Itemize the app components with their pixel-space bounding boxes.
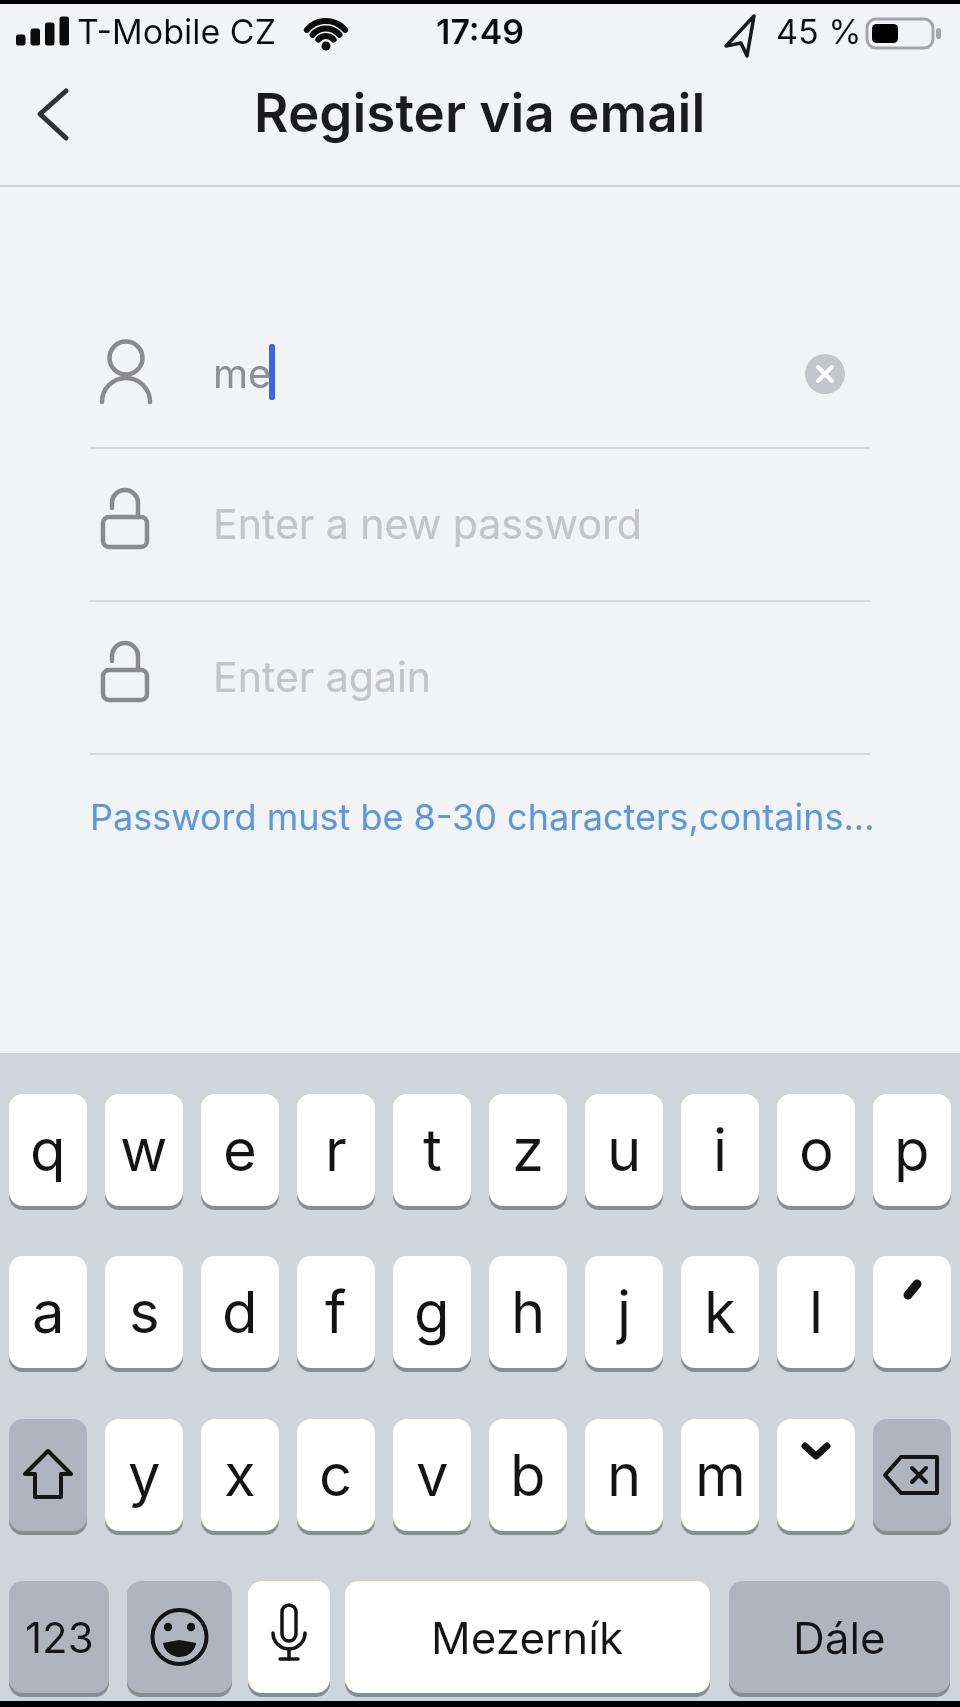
button[interactable]: f <box>297 1256 375 1368</box>
staticText: v <box>416 1440 449 1510</box>
button[interactable]: Dále <box>729 1581 950 1693</box>
staticText: T-Mobile CZ <box>77 11 277 52</box>
button[interactable]: o <box>777 1094 855 1206</box>
button[interactable]: x <box>201 1419 279 1531</box>
button[interactable]: Mezerník <box>345 1581 710 1693</box>
staticText: d <box>222 1277 258 1347</box>
button[interactable] <box>873 1419 951 1531</box>
staticText: Password must be 8-30 characters,contain… <box>90 795 875 839</box>
staticText: me <box>213 349 272 397</box>
button[interactable]: p <box>873 1094 951 1206</box>
staticText: t <box>423 1115 442 1185</box>
staticText: k <box>704 1277 736 1347</box>
staticText: c <box>319 1440 353 1510</box>
staticText: 123 <box>25 1612 94 1663</box>
button[interactable]: y <box>105 1419 183 1531</box>
button[interactable] <box>90 300 870 446</box>
button[interactable] <box>20 75 100 155</box>
button[interactable]: d <box>201 1256 279 1368</box>
button[interactable] <box>777 1419 855 1531</box>
staticText: s <box>129 1277 160 1347</box>
staticText: a <box>32 1277 65 1347</box>
staticText: b <box>510 1440 546 1510</box>
button[interactable]: e <box>201 1094 279 1206</box>
staticText: 17:49 <box>436 11 525 52</box>
button[interactable]: v <box>393 1419 471 1531</box>
button[interactable]: c <box>297 1419 375 1531</box>
staticText: x <box>224 1440 256 1510</box>
button[interactable] <box>873 1256 951 1368</box>
button[interactable]: w <box>105 1094 183 1206</box>
staticText: m <box>695 1440 746 1510</box>
button[interactable]: i <box>681 1094 759 1206</box>
button[interactable]: k <box>681 1256 759 1368</box>
staticText: o <box>799 1115 834 1185</box>
staticText: r <box>325 1115 347 1185</box>
staticText: i <box>713 1115 728 1185</box>
button[interactable]: b <box>489 1419 567 1531</box>
staticText: g <box>414 1277 450 1347</box>
button[interactable]: m <box>681 1419 759 1531</box>
button[interactable]: a <box>9 1256 87 1368</box>
staticText: j <box>617 1277 632 1347</box>
button[interactable]: n <box>585 1419 663 1531</box>
button[interactable] <box>90 449 870 599</box>
staticText: u <box>607 1115 642 1185</box>
staticText: n <box>607 1440 642 1510</box>
staticText: Dále <box>793 1611 886 1664</box>
staticText: f <box>325 1277 347 1347</box>
button[interactable]: h <box>489 1256 567 1368</box>
button[interactable]: q <box>9 1094 87 1206</box>
staticText: h <box>511 1277 546 1347</box>
button[interactable]: u <box>585 1094 663 1206</box>
button[interactable]: s <box>105 1256 183 1368</box>
staticText: y <box>128 1440 161 1510</box>
button[interactable] <box>805 354 845 394</box>
staticText: Enter again <box>213 652 432 702</box>
staticText: z <box>512 1115 545 1185</box>
staticText: w <box>120 1115 168 1185</box>
button[interactable] <box>9 1419 87 1531</box>
button[interactable]: j <box>585 1256 663 1368</box>
staticText: Register via email <box>254 81 706 145</box>
button[interactable]: l <box>777 1256 855 1368</box>
staticText: Mezerník <box>431 1611 624 1664</box>
button[interactable] <box>127 1581 232 1693</box>
staticText: e <box>223 1115 257 1185</box>
button[interactable] <box>248 1581 330 1693</box>
staticText: Enter a new password <box>213 499 642 549</box>
button[interactable]: 123 <box>9 1581 109 1693</box>
staticText: p <box>894 1115 930 1185</box>
button[interactable]: t <box>393 1094 471 1206</box>
button[interactable] <box>90 602 870 752</box>
staticText: q <box>30 1115 66 1185</box>
button[interactable]: z <box>489 1094 567 1206</box>
staticText: l <box>809 1277 824 1347</box>
button[interactable]: g <box>393 1256 471 1368</box>
button[interactable]: r <box>297 1094 375 1206</box>
staticText: 45 % <box>776 11 862 52</box>
